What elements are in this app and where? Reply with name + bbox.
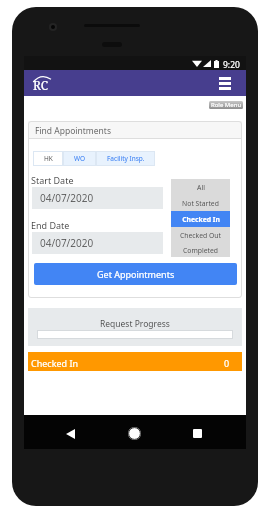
button[interactable]: Back [57, 420, 84, 447]
staticText: Get Appointments [97, 268, 175, 280]
button[interactable]: Checked In [28, 352, 242, 371]
staticText: 0 [224, 357, 230, 369]
button[interactable]: 04/07/2020 [32, 187, 163, 209]
button[interactable]: Facility Insp. [96, 151, 155, 166]
button[interactable]: Recent apps [184, 420, 211, 447]
button[interactable]: Get Appointments [34, 263, 237, 285]
staticText: Not Started [182, 199, 219, 208]
staticText: 9:20 [223, 59, 240, 71]
staticText: 04/07/2020 [40, 191, 94, 205]
button[interactable]: Completed [171, 243, 230, 257]
staticText: Request Progress [100, 318, 170, 330]
staticText: WO [74, 154, 86, 163]
staticText: Find Appointments [35, 125, 111, 137]
staticText: End Date [31, 219, 70, 231]
staticText: All [197, 183, 205, 192]
button[interactable]: Checked In [171, 211, 230, 227]
staticText: Role Menu [211, 101, 242, 109]
button[interactable]: WO [63, 151, 96, 166]
button[interactable]: Menu [215, 73, 235, 93]
staticText: RC [33, 77, 49, 92]
staticText: HK [44, 154, 53, 163]
staticText: Checked In [182, 215, 220, 224]
button[interactable]: Not Started [171, 195, 230, 211]
button[interactable]: All [171, 179, 230, 195]
button[interactable]: Home [121, 420, 148, 447]
button[interactable]: HK [33, 151, 63, 166]
staticText: Checked In [31, 357, 79, 369]
button[interactable]: Checked Out [171, 227, 230, 243]
button[interactable]: 04/07/2020 [32, 232, 163, 254]
staticText: Facility Insp. [107, 154, 145, 163]
staticText: Checked Out [180, 231, 221, 240]
staticText: Start Date [31, 174, 74, 186]
staticText: Completed [183, 246, 218, 255]
staticText: 04/07/2020 [40, 236, 94, 250]
